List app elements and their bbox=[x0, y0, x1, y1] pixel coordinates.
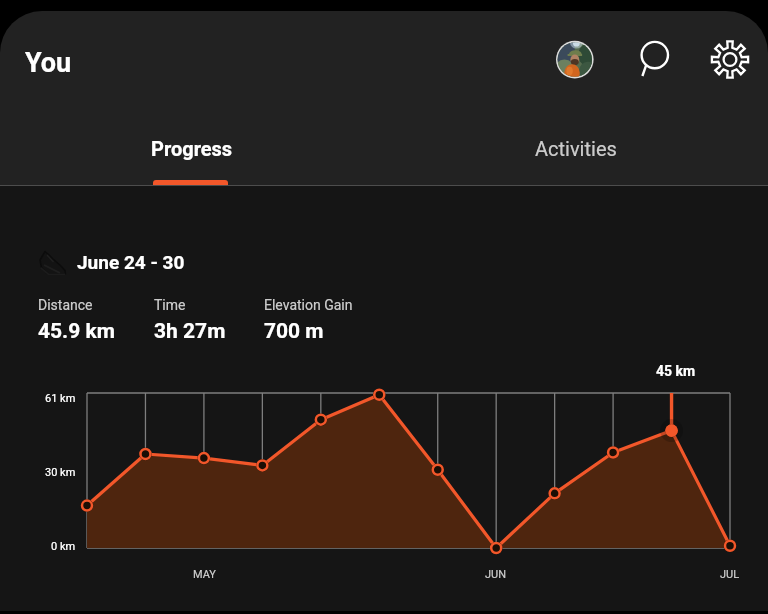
staticText: Activities bbox=[535, 137, 617, 160]
staticText: Time bbox=[154, 297, 186, 313]
staticText: Progress bbox=[151, 137, 233, 160]
button[interactable]: Search bbox=[632, 32, 678, 78]
button[interactable]: Settings bbox=[707, 36, 753, 82]
staticText: Elevation Gain bbox=[264, 297, 353, 313]
staticText: JUL bbox=[720, 568, 740, 581]
button[interactable] bbox=[20, 240, 440, 350]
staticText: 700 m bbox=[264, 319, 324, 344]
staticText: 45.9 km bbox=[38, 319, 115, 344]
staticText: 30 km bbox=[45, 466, 76, 479]
staticText: 0 km bbox=[51, 540, 76, 553]
staticText: MAY bbox=[193, 568, 216, 581]
staticText: JUN bbox=[485, 568, 507, 581]
staticText: 45 km bbox=[656, 363, 696, 379]
staticText: 3h 27m bbox=[154, 319, 226, 344]
button[interactable]: Profile bbox=[552, 37, 598, 83]
staticText: June 24 - 30 bbox=[77, 251, 185, 273]
staticText: 61 km bbox=[45, 392, 76, 405]
button[interactable]: Progress bbox=[0, 121, 384, 185]
staticText: You bbox=[25, 47, 72, 79]
button[interactable]: Activities bbox=[384, 121, 768, 185]
staticText: Distance bbox=[38, 297, 93, 313]
